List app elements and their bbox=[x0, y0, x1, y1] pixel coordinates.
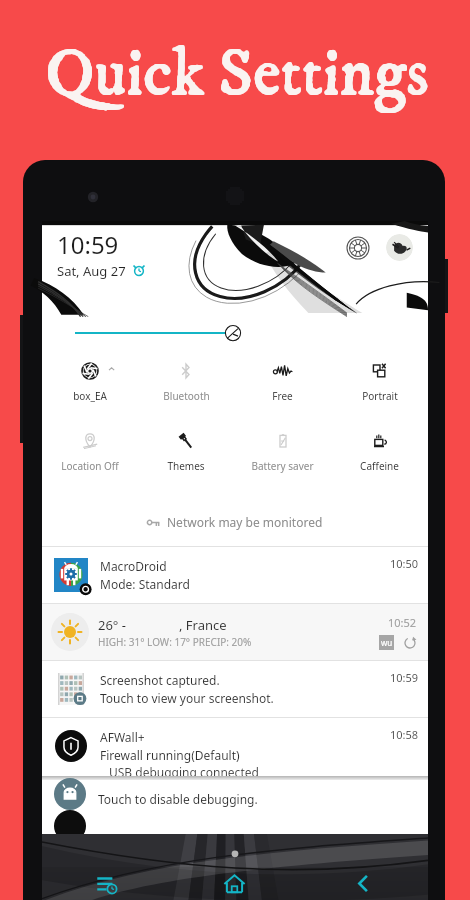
staticText: Quick Settings bbox=[45, 34, 429, 117]
staticText: Caffeine bbox=[360, 459, 399, 473]
staticText: Screenshot captured. bbox=[100, 672, 220, 688]
staticText: MacroDroid bbox=[100, 558, 167, 574]
staticText: Sat, Aug 27 bbox=[57, 262, 126, 280]
staticText: HIGH: 31° LOW: 17° PRECIP: 20% bbox=[98, 635, 252, 649]
staticText: 10:58 bbox=[390, 727, 419, 742]
staticText: Bluetooth bbox=[163, 389, 210, 403]
staticText: Themes bbox=[167, 459, 205, 473]
staticText: Quick Settings bbox=[46, 34, 430, 117]
staticText: Location Off bbox=[61, 459, 119, 473]
button[interactable]: Caffeine bbox=[331, 417, 428, 487]
button[interactable]: MacroDroid bbox=[42, 547, 428, 603]
staticText: box_EA bbox=[73, 389, 107, 403]
staticText: Touch to disable debugging. bbox=[98, 791, 258, 807]
button[interactable]: Recent apps bbox=[42, 834, 170, 900]
button[interactable]: Network may be monitored bbox=[42, 499, 428, 545]
button[interactable]: User profile bbox=[386, 234, 413, 261]
staticText: Free bbox=[272, 389, 293, 403]
button[interactable]: Brightness bbox=[42, 317, 428, 343]
button[interactable]: Portrait bbox=[331, 347, 428, 417]
staticText: 10:52 bbox=[388, 615, 417, 630]
button[interactable]: Free bbox=[234, 347, 331, 417]
button[interactable]: Location Off bbox=[42, 417, 138, 487]
button[interactable]: Settings bbox=[346, 236, 370, 260]
button[interactable]: Screenshot captured. bbox=[42, 661, 428, 717]
staticText: Touch to view your screenshot. bbox=[100, 690, 274, 706]
staticText: Quick Settings bbox=[46, 35, 430, 118]
staticText: 10:50 bbox=[390, 556, 419, 571]
button[interactable]: Bluetooth bbox=[138, 347, 234, 417]
staticText: Firewall running(Default) bbox=[100, 747, 240, 763]
button[interactable]: Back bbox=[299, 834, 428, 900]
staticText: 26° - bbox=[98, 616, 127, 634]
staticText: wu bbox=[381, 637, 393, 648]
staticText: Battery saver bbox=[251, 459, 314, 473]
button[interactable]: 26° - bbox=[42, 604, 428, 660]
staticText: Quick Settings bbox=[45, 35, 429, 118]
staticText: AFWall+ bbox=[100, 729, 145, 745]
staticText: Portrait bbox=[362, 389, 398, 403]
staticText: Network may be monitored bbox=[167, 514, 323, 530]
staticText: , France bbox=[179, 616, 227, 634]
button[interactable]: Themes bbox=[138, 417, 234, 487]
button[interactable]: box_EA bbox=[42, 347, 138, 417]
staticText: Mode: Standard bbox=[100, 576, 190, 592]
staticText: 10:59 bbox=[390, 670, 419, 685]
button[interactable]: AFWall+ bbox=[42, 718, 428, 774]
button[interactable]: Battery saver bbox=[234, 417, 331, 487]
staticText: 10:59 bbox=[57, 228, 119, 261]
button[interactable]: Touch to disable debugging. bbox=[42, 774, 428, 814]
button[interactable]: Home bbox=[170, 834, 299, 900]
staticText: USB debugging connected bbox=[109, 764, 259, 780]
